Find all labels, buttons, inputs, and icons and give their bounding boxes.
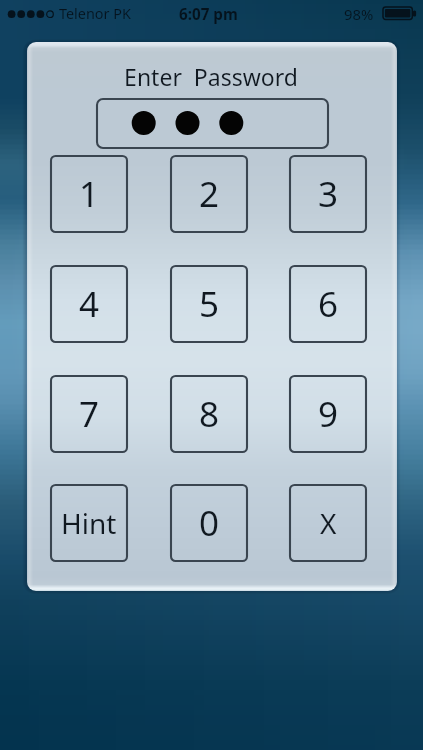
button[interactable]: 0 (170, 484, 248, 562)
staticText: Telenor PK (59, 4, 131, 24)
button[interactable]: 1 (50, 155, 128, 233)
button[interactable]: 9 (289, 375, 367, 453)
staticText: 98% (344, 4, 374, 24)
button[interactable]: 7 (50, 375, 128, 453)
staticText: 4 (79, 280, 100, 328)
staticText: 6:07 pm (179, 4, 238, 25)
button[interactable]: 4 (50, 265, 128, 343)
staticText: Hint (61, 504, 117, 542)
button[interactable]: Hint (50, 484, 128, 562)
button[interactable]: X (289, 484, 367, 562)
staticText: 5 (199, 280, 220, 328)
staticText: 3 (318, 170, 339, 218)
staticText: 7 (79, 390, 100, 438)
staticText: X (320, 504, 337, 542)
button[interactable]: 3 (289, 155, 367, 233)
button[interactable]: 6 (289, 265, 367, 343)
staticText: 2 (199, 170, 220, 218)
button[interactable]: 2 (170, 155, 248, 233)
button[interactable]: 5 (170, 265, 248, 343)
staticText: 0 (199, 499, 220, 547)
staticText: 8 (199, 390, 220, 438)
staticText: 6 (318, 280, 339, 328)
staticText: 1 (79, 170, 100, 218)
staticText: 9 (318, 390, 339, 438)
staticText: Enter Password (124, 61, 298, 92)
button[interactable]: 8 (170, 375, 248, 453)
